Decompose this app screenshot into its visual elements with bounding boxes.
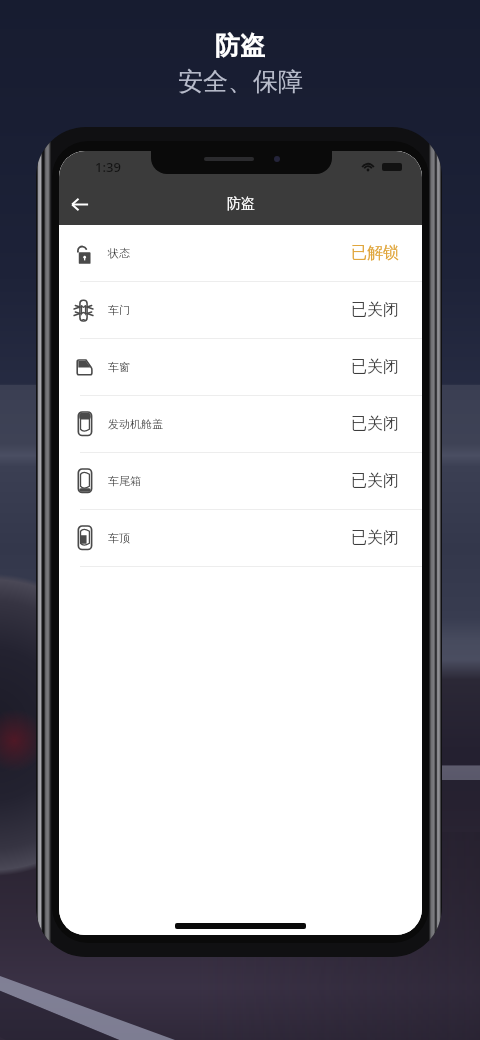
staticText: 已关闭 bbox=[351, 528, 399, 548]
staticText: 已关闭 bbox=[351, 471, 399, 491]
staticText: 车门 bbox=[108, 303, 130, 317]
button[interactable]: 车门 bbox=[59, 282, 422, 339]
staticText: 已关闭 bbox=[351, 357, 399, 377]
staticText: 状态 bbox=[108, 246, 130, 260]
staticText: 车窗 bbox=[108, 360, 130, 374]
staticText: 发动机舱盖 bbox=[108, 417, 163, 431]
staticText: 防盗 bbox=[215, 30, 265, 61]
button[interactable]: 车顶 bbox=[59, 510, 422, 567]
button[interactable]: 状态 bbox=[59, 225, 422, 282]
button[interactable]: 车窗 bbox=[59, 339, 422, 396]
staticText: 已解锁 bbox=[351, 243, 399, 263]
staticText: 安全、保障 bbox=[178, 66, 303, 97]
staticText: 已关闭 bbox=[351, 300, 399, 320]
button[interactable]: Back bbox=[65, 189, 95, 219]
staticText: 1:39 bbox=[95, 158, 121, 176]
staticText: 已关闭 bbox=[351, 414, 399, 434]
staticText: 车顶 bbox=[108, 531, 130, 545]
staticText: 防盗 bbox=[227, 195, 255, 213]
staticText: 车尾箱 bbox=[108, 474, 141, 488]
button[interactable]: 发动机舱盖 bbox=[59, 396, 422, 453]
button[interactable]: 车尾箱 bbox=[59, 453, 422, 510]
